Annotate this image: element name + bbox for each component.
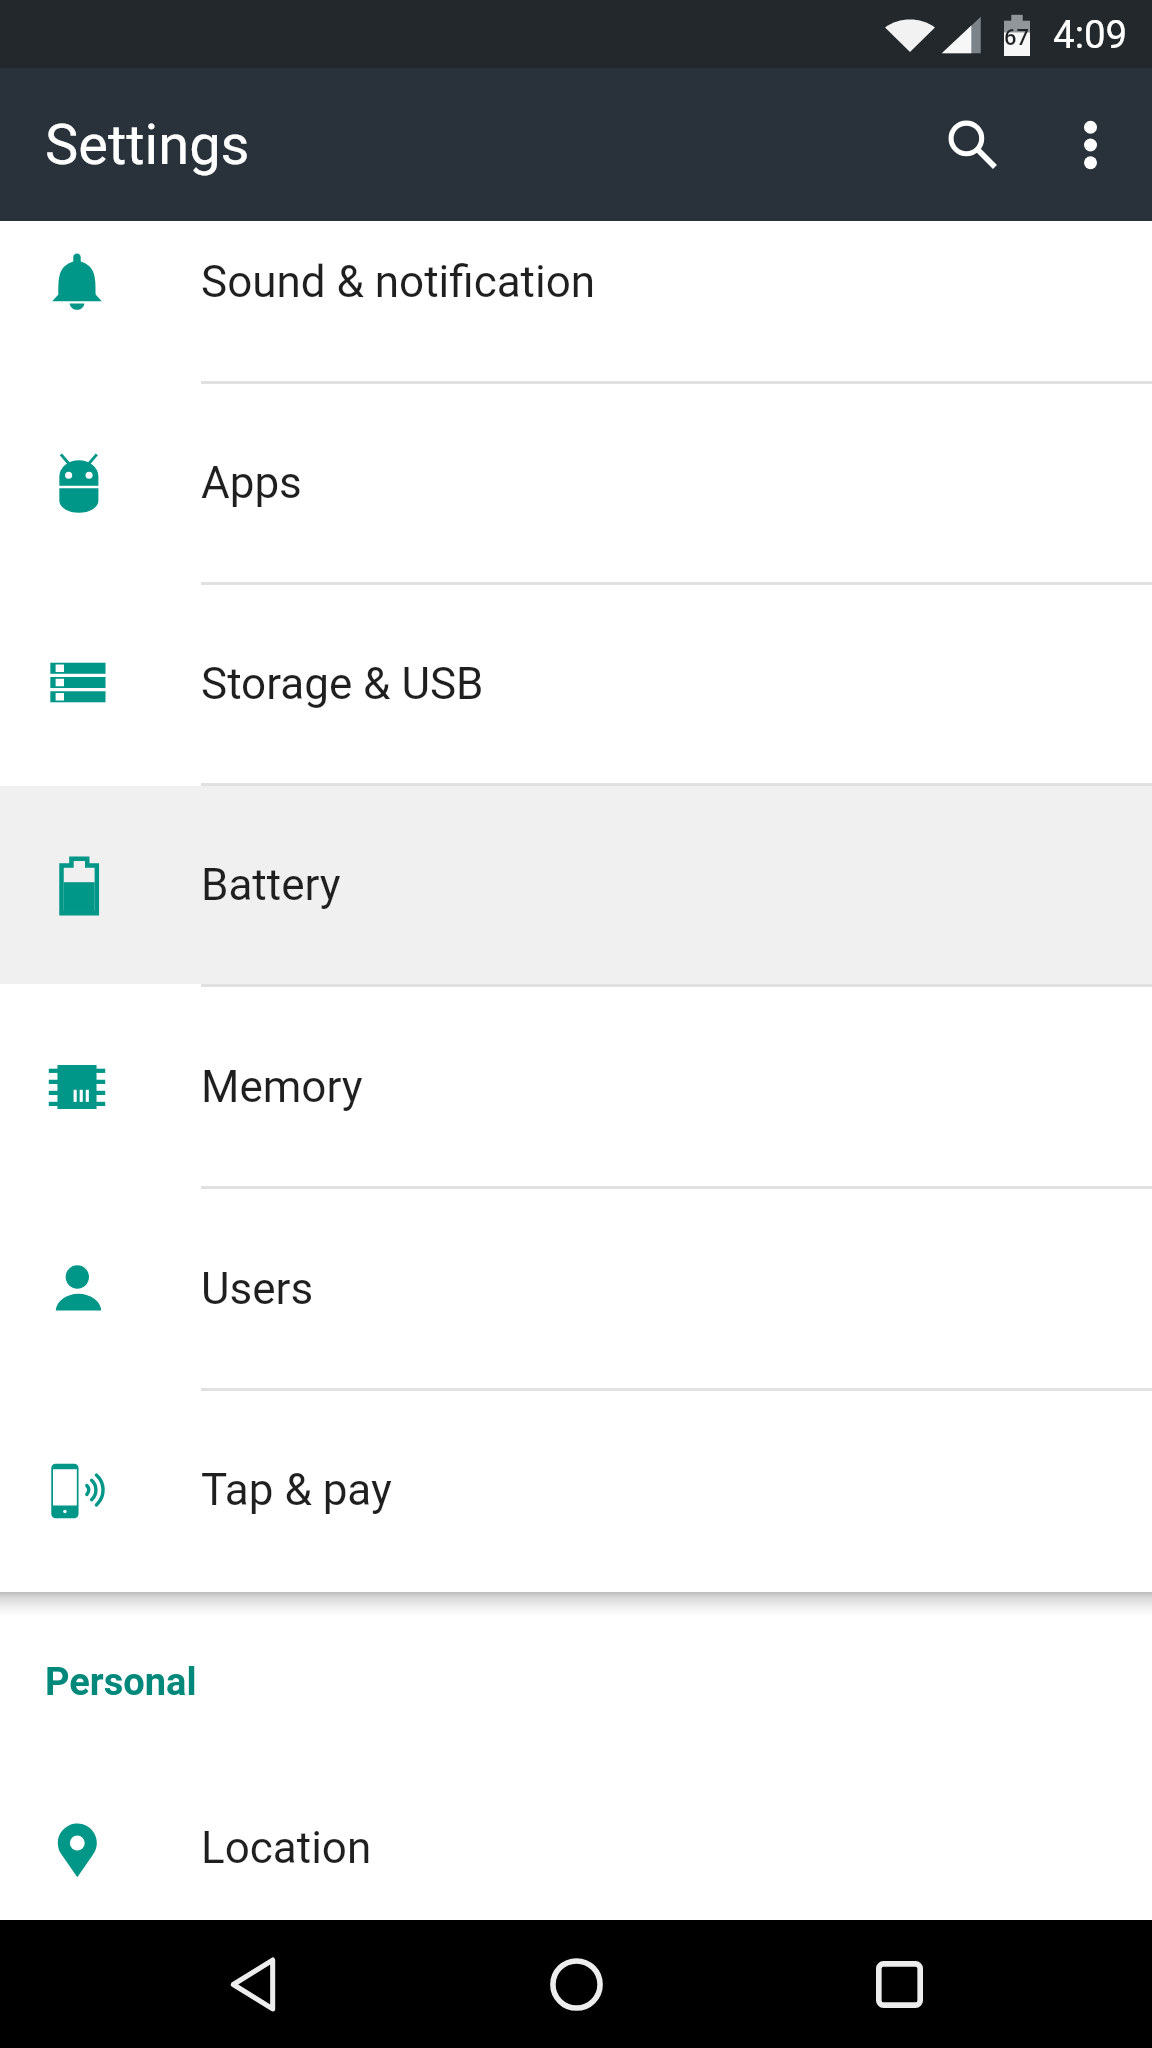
button[interactable]: Battery — [0, 786, 1152, 984]
button[interactable]: Search — [910, 68, 1035, 221]
staticText: Personal — [45, 1660, 197, 1705]
button[interactable]: Recents — [738, 1920, 1061, 2048]
staticText: Sound & notification — [201, 256, 596, 308]
button[interactable]: Tap & pay — [0, 1391, 1152, 1589]
button[interactable]: Location — [0, 1775, 1152, 1920]
staticText: Tap & pay — [201, 1464, 392, 1516]
staticText: Settings — [45, 112, 250, 178]
button[interactable]: Memory — [0, 987, 1152, 1186]
button[interactable]: Storage & USB — [0, 585, 1152, 783]
staticText: Memory — [201, 1061, 363, 1113]
staticText: 4:09 — [1053, 12, 1128, 57]
staticText: 67 — [1004, 25, 1030, 51]
staticText: Users — [201, 1263, 314, 1315]
staticText: Apps — [201, 457, 302, 509]
staticText: Location — [201, 1822, 372, 1874]
button[interactable]: Back — [91, 1920, 415, 2048]
button[interactable]: More options — [1035, 68, 1145, 221]
staticText: Battery — [201, 859, 341, 911]
button[interactable]: Home — [415, 1920, 738, 2048]
button[interactable]: Sound & notification — [0, 221, 1152, 381]
button[interactable]: Users — [0, 1189, 1152, 1388]
staticText: Storage & USB — [201, 658, 484, 710]
button[interactable]: Apps — [0, 384, 1152, 582]
